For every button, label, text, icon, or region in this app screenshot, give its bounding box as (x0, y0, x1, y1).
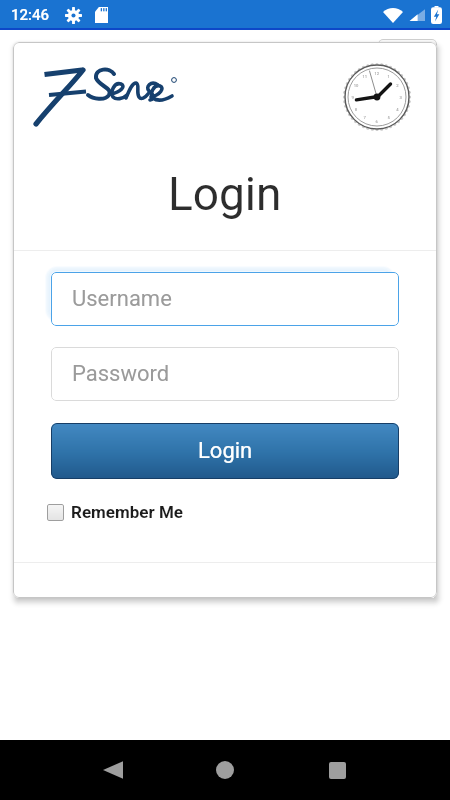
button[interactable]: Login (51, 423, 399, 479)
button[interactable]: Password (51, 347, 399, 401)
staticText: Login (168, 167, 282, 221)
button[interactable]: Home (200, 740, 250, 800)
staticText: Remember Me (71, 502, 183, 522)
staticText: 12:46 (11, 6, 50, 24)
staticText: Password (72, 361, 170, 387)
button[interactable]: Back (88, 740, 137, 800)
staticText: Username (72, 286, 172, 312)
button[interactable]: Recents (312, 740, 362, 800)
staticText: Login (198, 438, 253, 464)
button[interactable]: Username (51, 272, 399, 326)
button[interactable]: Remember Me (47, 502, 183, 522)
